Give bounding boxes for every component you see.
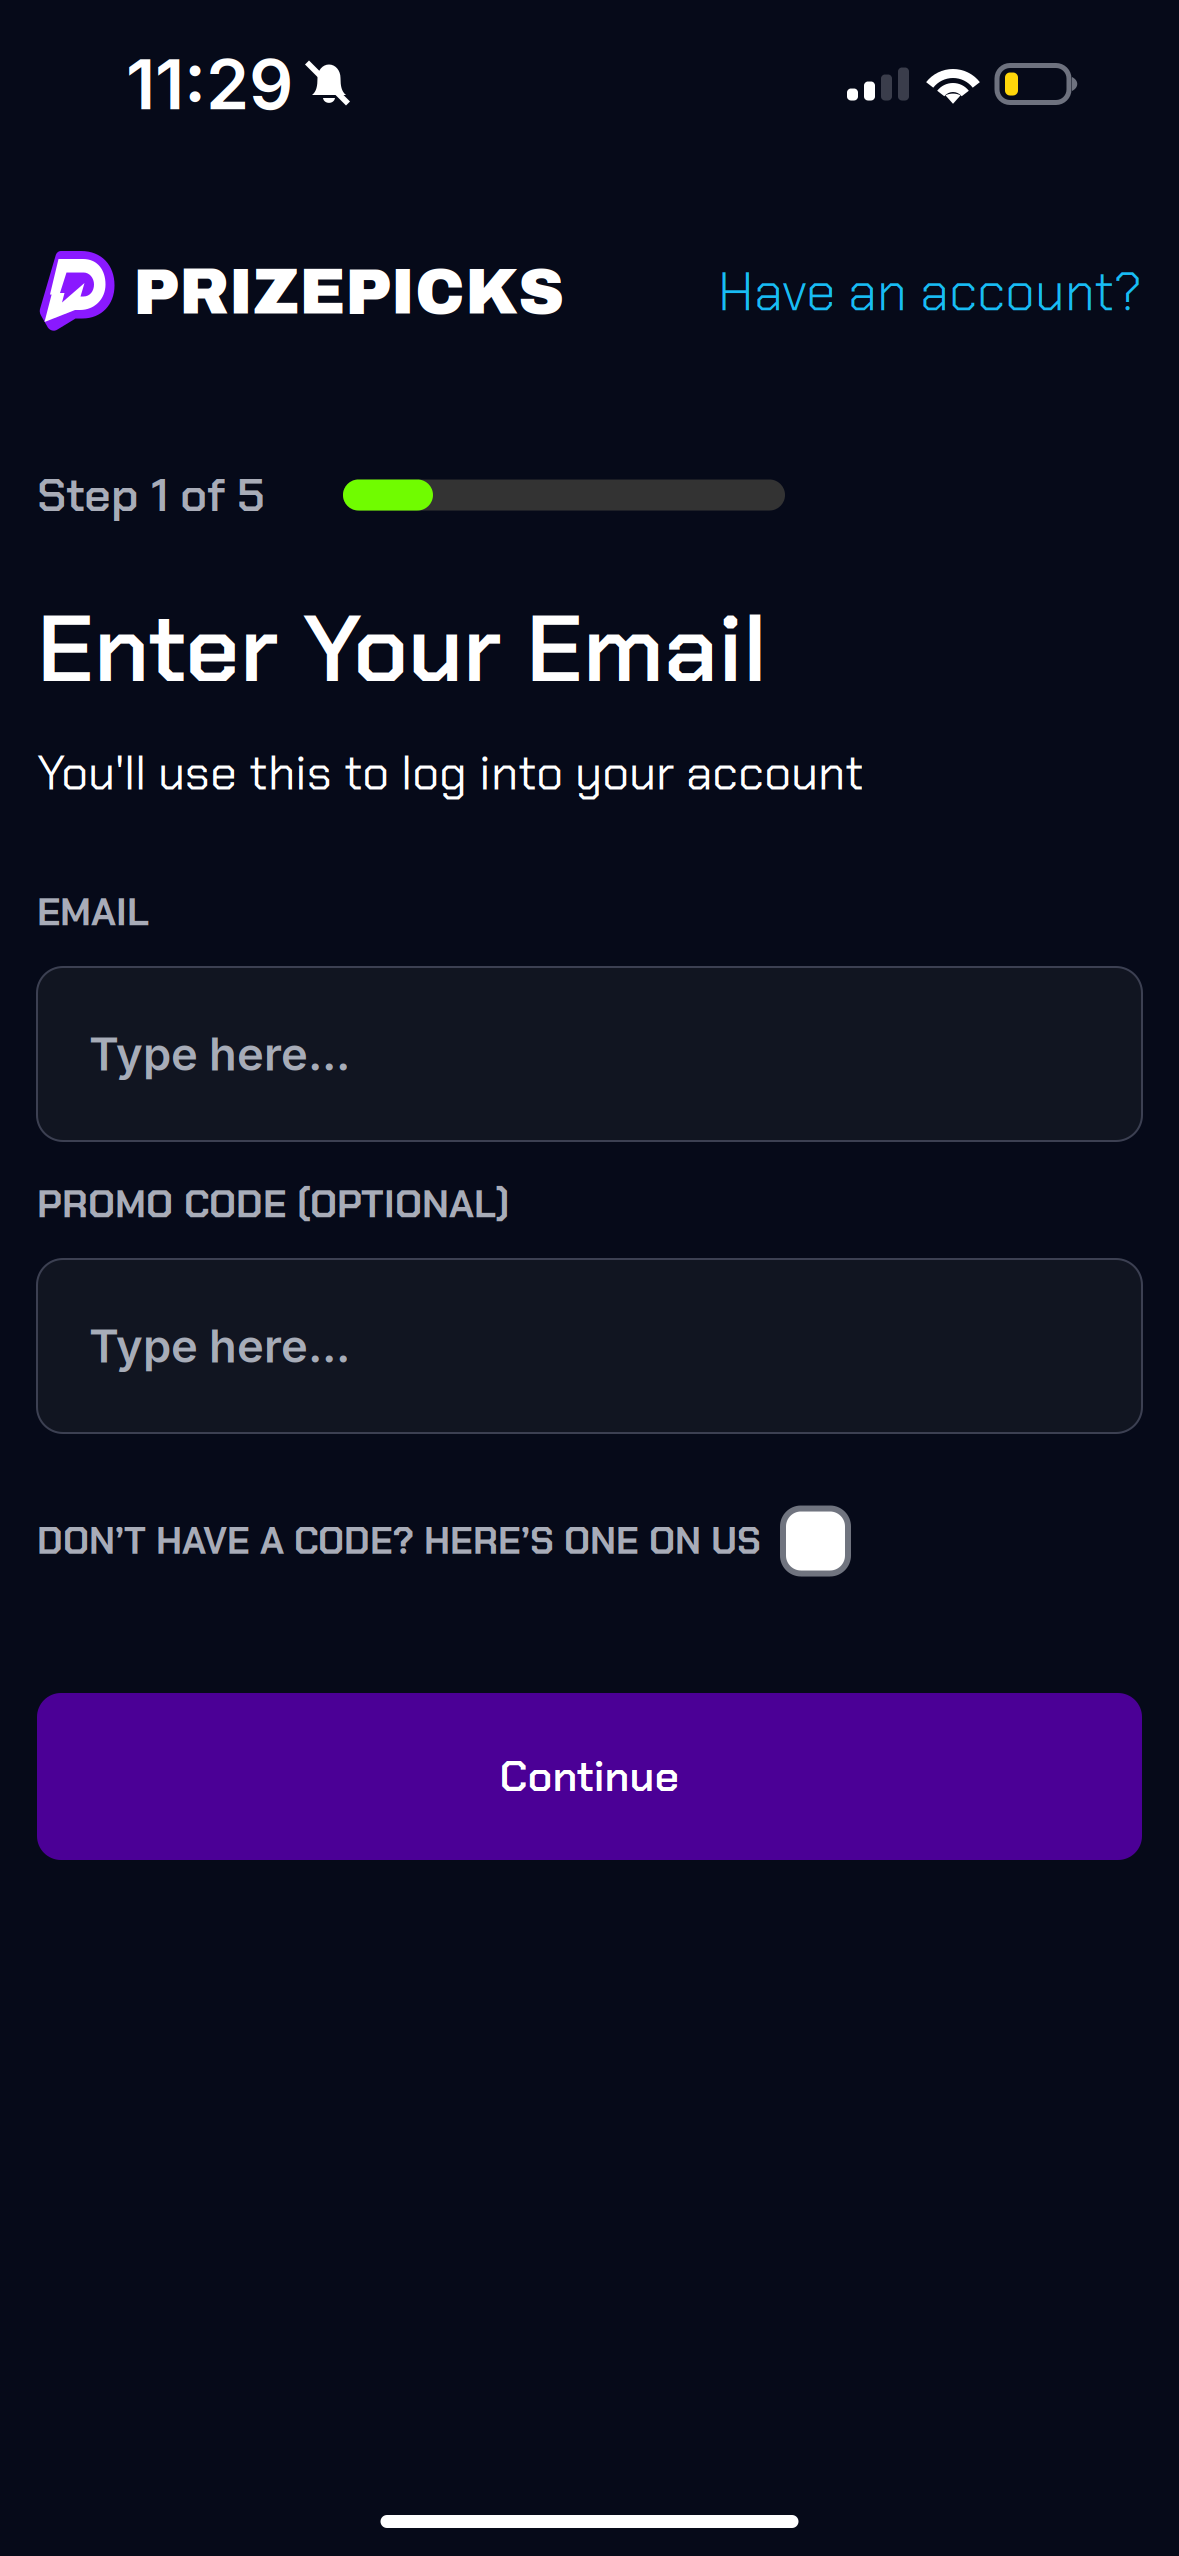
staticText: Type here... (89, 1319, 350, 1373)
button[interactable]: DON’T HAVE A CODE? HERE’S ONE ON US (37, 1508, 1142, 1574)
staticText: PRIZEPICKS (133, 257, 564, 327)
staticText: Have an account? (718, 257, 1142, 327)
staticText: Enter Your Email (37, 587, 767, 711)
staticText: PROMO CODE (OPTIONAL) (37, 1179, 509, 1229)
staticText: Type here... (89, 1027, 350, 1081)
staticText: You'll use this to log into your account (37, 742, 864, 804)
staticText: 11:29 (126, 42, 293, 126)
button[interactable]: Type here... (37, 1259, 1142, 1433)
button[interactable]: Continue (37, 1693, 1142, 1860)
staticText: EMAIL (37, 887, 149, 937)
button[interactable]: Type here... (37, 967, 1142, 1141)
staticText: DON’T HAVE A CODE? HERE’S ONE ON US (37, 1517, 761, 1565)
button[interactable]: Have an account? (718, 257, 1142, 327)
staticText: Step 1 of 5 (37, 465, 265, 525)
staticText: Continue (499, 1749, 679, 1804)
